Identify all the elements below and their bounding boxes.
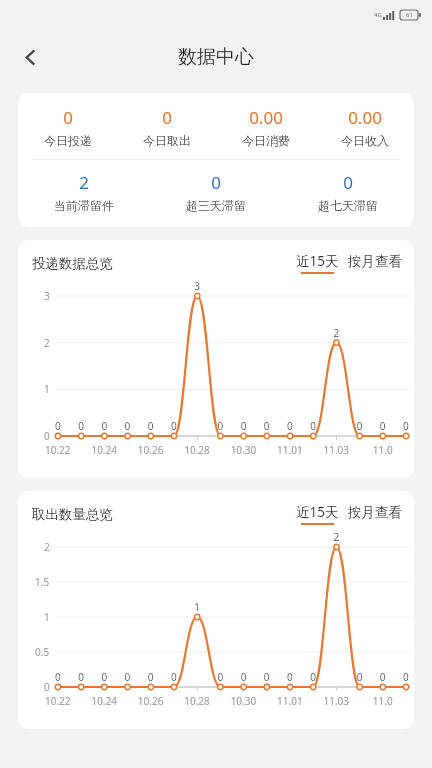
- staticText: 0: [211, 171, 221, 194]
- staticText: 超七天滞留: [318, 198, 378, 213]
- staticText: 今日消费: [242, 133, 290, 148]
- staticText: 取出数量总览: [32, 506, 113, 523]
- staticText: 按月查看: [348, 253, 402, 270]
- button[interactable]: 0: [18, 106, 117, 148]
- staticText: 数据中心: [178, 45, 254, 69]
- staticText: 2: [79, 171, 89, 194]
- button[interactable]: 近15天: [296, 503, 339, 525]
- staticText: 超三天滞留: [186, 198, 246, 213]
- button[interactable]: Back: [8, 35, 52, 79]
- button[interactable]: 按月查看: [348, 253, 402, 274]
- staticText: 当前滞留件: [54, 198, 114, 213]
- staticText: 今日投递: [44, 133, 92, 148]
- staticText: 投递数据总览: [32, 255, 113, 272]
- staticText: 0.00: [249, 106, 283, 129]
- button[interactable]: 0: [150, 171, 282, 213]
- staticText: 0.00: [348, 106, 382, 129]
- staticText: 0: [343, 171, 353, 194]
- staticText: 近15天: [296, 503, 339, 521]
- button[interactable]: 0.00: [315, 106, 414, 148]
- staticText: 按月查看: [348, 504, 402, 521]
- button[interactable]: 按月查看: [348, 504, 402, 525]
- button[interactable]: 0.00: [216, 106, 315, 148]
- button[interactable]: 0: [282, 171, 414, 213]
- staticText: 4G: [374, 11, 382, 19]
- button[interactable]: 2: [18, 171, 150, 213]
- staticText: 0: [63, 106, 73, 129]
- staticText: 近15天: [296, 252, 339, 270]
- staticText: 今日收入: [341, 133, 389, 148]
- staticText: 61: [406, 11, 413, 19]
- staticText: 0: [162, 106, 172, 129]
- button[interactable]: 近15天: [296, 252, 339, 274]
- staticText: 今日取出: [143, 133, 191, 148]
- button[interactable]: 0: [117, 106, 216, 148]
